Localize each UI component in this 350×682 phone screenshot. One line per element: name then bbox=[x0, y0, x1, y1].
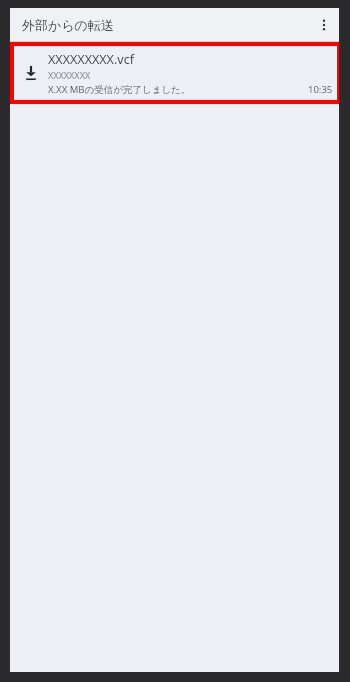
staticText: 外部からの転送 bbox=[22, 17, 114, 33]
button[interactable]: XXXXXXXXX.vcf bbox=[14, 46, 337, 100]
staticText: XXXXXXXXX.vcf bbox=[48, 51, 134, 68]
staticText: X.XX MBの受信が完了しました。 bbox=[48, 83, 191, 96]
button[interactable]: More options bbox=[309, 10, 339, 40]
staticText: XXXXXXXX bbox=[48, 69, 91, 81]
staticText: 10:35 bbox=[308, 83, 333, 96]
